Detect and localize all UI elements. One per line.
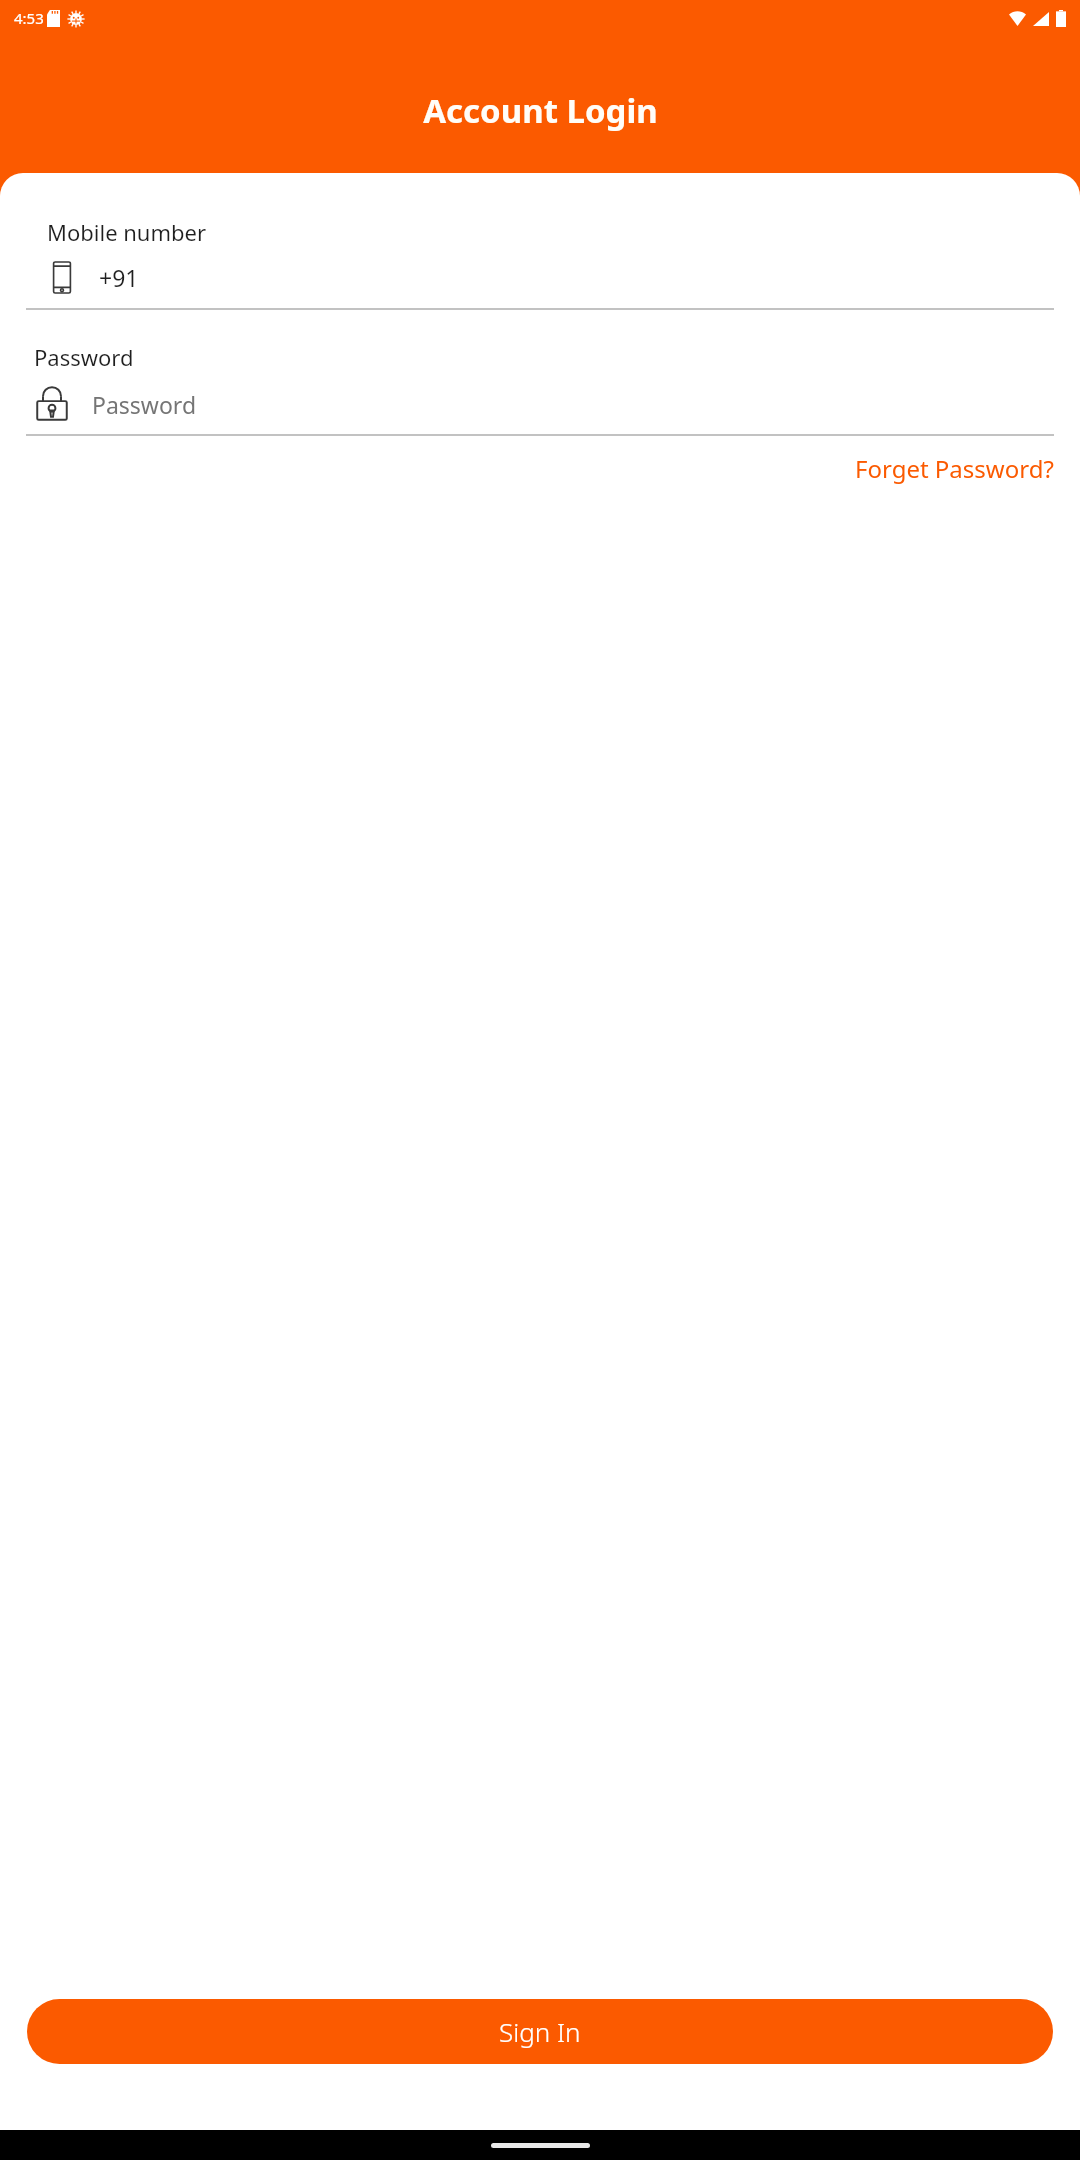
staticText: Password (92, 389, 197, 420)
button[interactable]: Sign In (27, 1999, 1053, 2064)
staticText: +91 (99, 262, 139, 293)
button[interactable]: Password (0, 342, 1080, 434)
staticText: Account Login (423, 88, 658, 133)
button[interactable]: Mobile number (0, 217, 1080, 308)
button[interactable]: Forget Password? (853, 448, 1056, 489)
staticText: Mobile number (47, 217, 207, 247)
other: Home gesture (491, 2143, 590, 2148)
staticText: 4:53 (14, 8, 44, 28)
staticText: Password (34, 342, 134, 372)
staticText: Sign In (499, 2014, 581, 2049)
staticText: Forget Password? (855, 452, 1054, 485)
